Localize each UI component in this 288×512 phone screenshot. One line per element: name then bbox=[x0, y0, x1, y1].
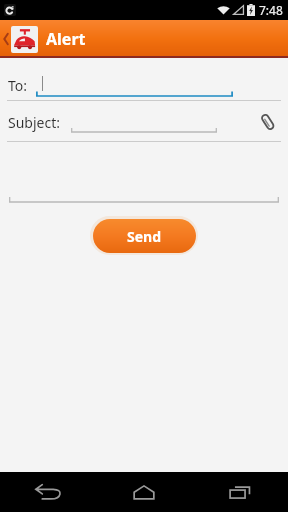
button[interactable]: Alert app icon bbox=[11, 26, 38, 53]
staticText: To: bbox=[8, 76, 28, 95]
staticText: Send bbox=[127, 227, 162, 246]
button[interactable]: Navigate up bbox=[0, 20, 11, 58]
button[interactable]: Recent apps bbox=[192, 472, 288, 512]
staticText: 7:48 bbox=[259, 2, 283, 18]
button[interactable]: Subject: bbox=[0, 105, 251, 139]
button[interactable]: To: bbox=[0, 71, 288, 99]
button[interactable]: Send bbox=[93, 219, 196, 253]
staticText: Alert bbox=[46, 28, 86, 50]
button[interactable]: Attach file bbox=[251, 105, 285, 139]
staticText: Subject: bbox=[8, 113, 60, 132]
button[interactable]: Back bbox=[0, 472, 96, 512]
button[interactable]: Home bbox=[96, 472, 192, 512]
button[interactable] bbox=[0, 146, 288, 203]
